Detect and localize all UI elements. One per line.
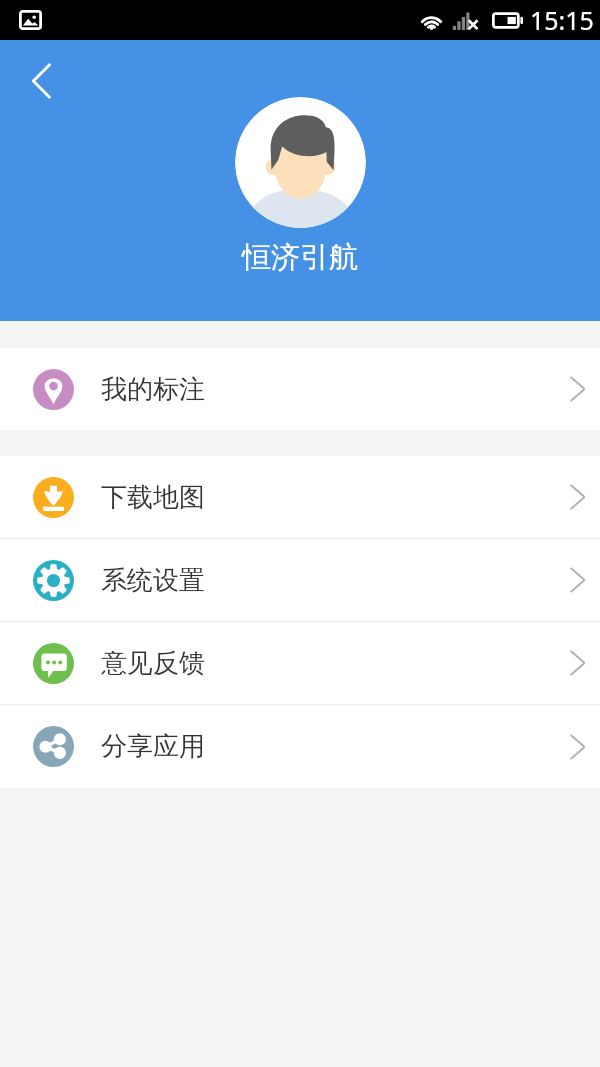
- button[interactable]: 我的标注: [0, 348, 600, 430]
- staticText: 恒济引航: [242, 239, 358, 276]
- button[interactable]: 意见反馈: [0, 622, 600, 704]
- staticText: 意见反馈: [101, 647, 205, 680]
- button[interactable]: 分享应用: [0, 705, 600, 788]
- staticText: 分享应用: [101, 730, 205, 763]
- button[interactable]: Back: [20, 59, 64, 103]
- button[interactable]: 下载地图: [0, 456, 600, 538]
- staticText: 系统设置: [101, 564, 205, 597]
- staticText: 下载地图: [101, 481, 205, 514]
- staticText: 15:15: [530, 3, 594, 37]
- button[interactable]: 系统设置: [0, 539, 600, 621]
- button[interactable]: Profile photo: [235, 97, 366, 228]
- staticText: 我的标注: [101, 373, 205, 406]
